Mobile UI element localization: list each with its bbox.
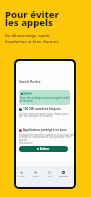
button[interactable]: Appels — [28, 171, 42, 178]
staticText: 100 000 numéros bloqués — [23, 107, 61, 111]
staticText: Pour éviter les appels — [5, 8, 60, 28]
staticText: Activer — [40, 147, 50, 151]
button[interactable]: Activer — [19, 146, 68, 152]
button[interactable]: Réglages — [56, 171, 70, 178]
button[interactable]: Bloqués — [19, 90, 70, 105]
staticText: Application protégée en auto — [23, 128, 67, 132]
button[interactable]: Accueil — [16, 171, 28, 178]
staticText: Réglages — [59, 175, 68, 178]
staticText: De démarchage, spam, frauduleux et bien … — [5, 33, 59, 44]
staticText: Appels — [32, 175, 39, 178]
staticText: Vous êtes protégé contre les appels indé… — [20, 96, 70, 102]
staticText: La liste noire est mise à jour chaque jo… — [19, 112, 69, 118]
staticText: Sarah Roche — [19, 79, 41, 84]
staticText: Signalez les numéros suspects en un seul… — [19, 133, 74, 145]
staticText: Liste — [47, 175, 52, 178]
button[interactable]: Liste — [42, 171, 56, 178]
staticText: Accueil — [18, 175, 25, 178]
staticText: Bloqués — [24, 92, 32, 95]
